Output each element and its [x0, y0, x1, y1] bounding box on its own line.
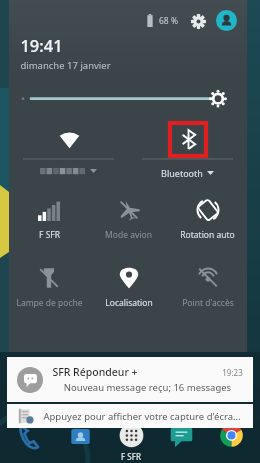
button[interactable]: Mode avion: [89, 186, 168, 254]
button[interactable]: User: [216, 10, 237, 31]
button[interactable]: Wi-Fi: [9, 114, 128, 186]
button[interactable]: Phone: [4, 419, 55, 463]
staticText: Localisation: [105, 297, 153, 309]
staticText: 19:23: [222, 367, 243, 378]
staticText: Point d'accès: [182, 297, 234, 309]
button[interactable]: Lampe de poche: [9, 254, 89, 322]
staticText: 19:41: [20, 34, 63, 56]
button[interactable]: Chrome: [206, 419, 256, 463]
staticText: Mode avion: [105, 229, 152, 241]
button[interactable]: F SFR: [9, 186, 89, 254]
button[interactable]: Messages: [156, 419, 206, 463]
button[interactable]: Contacts: [55, 419, 106, 463]
button[interactable]: Point d'accès: [168, 254, 247, 322]
staticText: SFR Répondeur +: [52, 365, 138, 379]
staticText: Nouveau message reçu; 16 messages non…: [52, 381, 243, 394]
staticText: F SFR: [121, 451, 141, 462]
staticText: F SFR: [39, 229, 60, 241]
button[interactable]: Appuyez pour afficher votre capture d'éc…: [7, 404, 253, 428]
staticText: Appuyez pour afficher votre capture d'éc…: [43, 410, 241, 423]
staticText: dimanche 17 janvier: [20, 59, 111, 72]
button[interactable]: Bluetooth: [128, 114, 247, 186]
button[interactable]: Apps: [106, 419, 156, 463]
button[interactable]: Brightness: [9, 82, 247, 114]
staticText: Rotation auto: [180, 229, 235, 241]
button[interactable]: Settings: [188, 11, 208, 31]
button[interactable]: Rotation auto: [168, 186, 247, 254]
staticText: 68 %: [159, 15, 178, 27]
staticText: Lampe de poche: [16, 297, 83, 309]
button[interactable]: SFR Répondeur +: [7, 357, 253, 402]
staticText: Bluetooth: [161, 167, 203, 179]
button[interactable]: Localisation: [89, 254, 168, 322]
